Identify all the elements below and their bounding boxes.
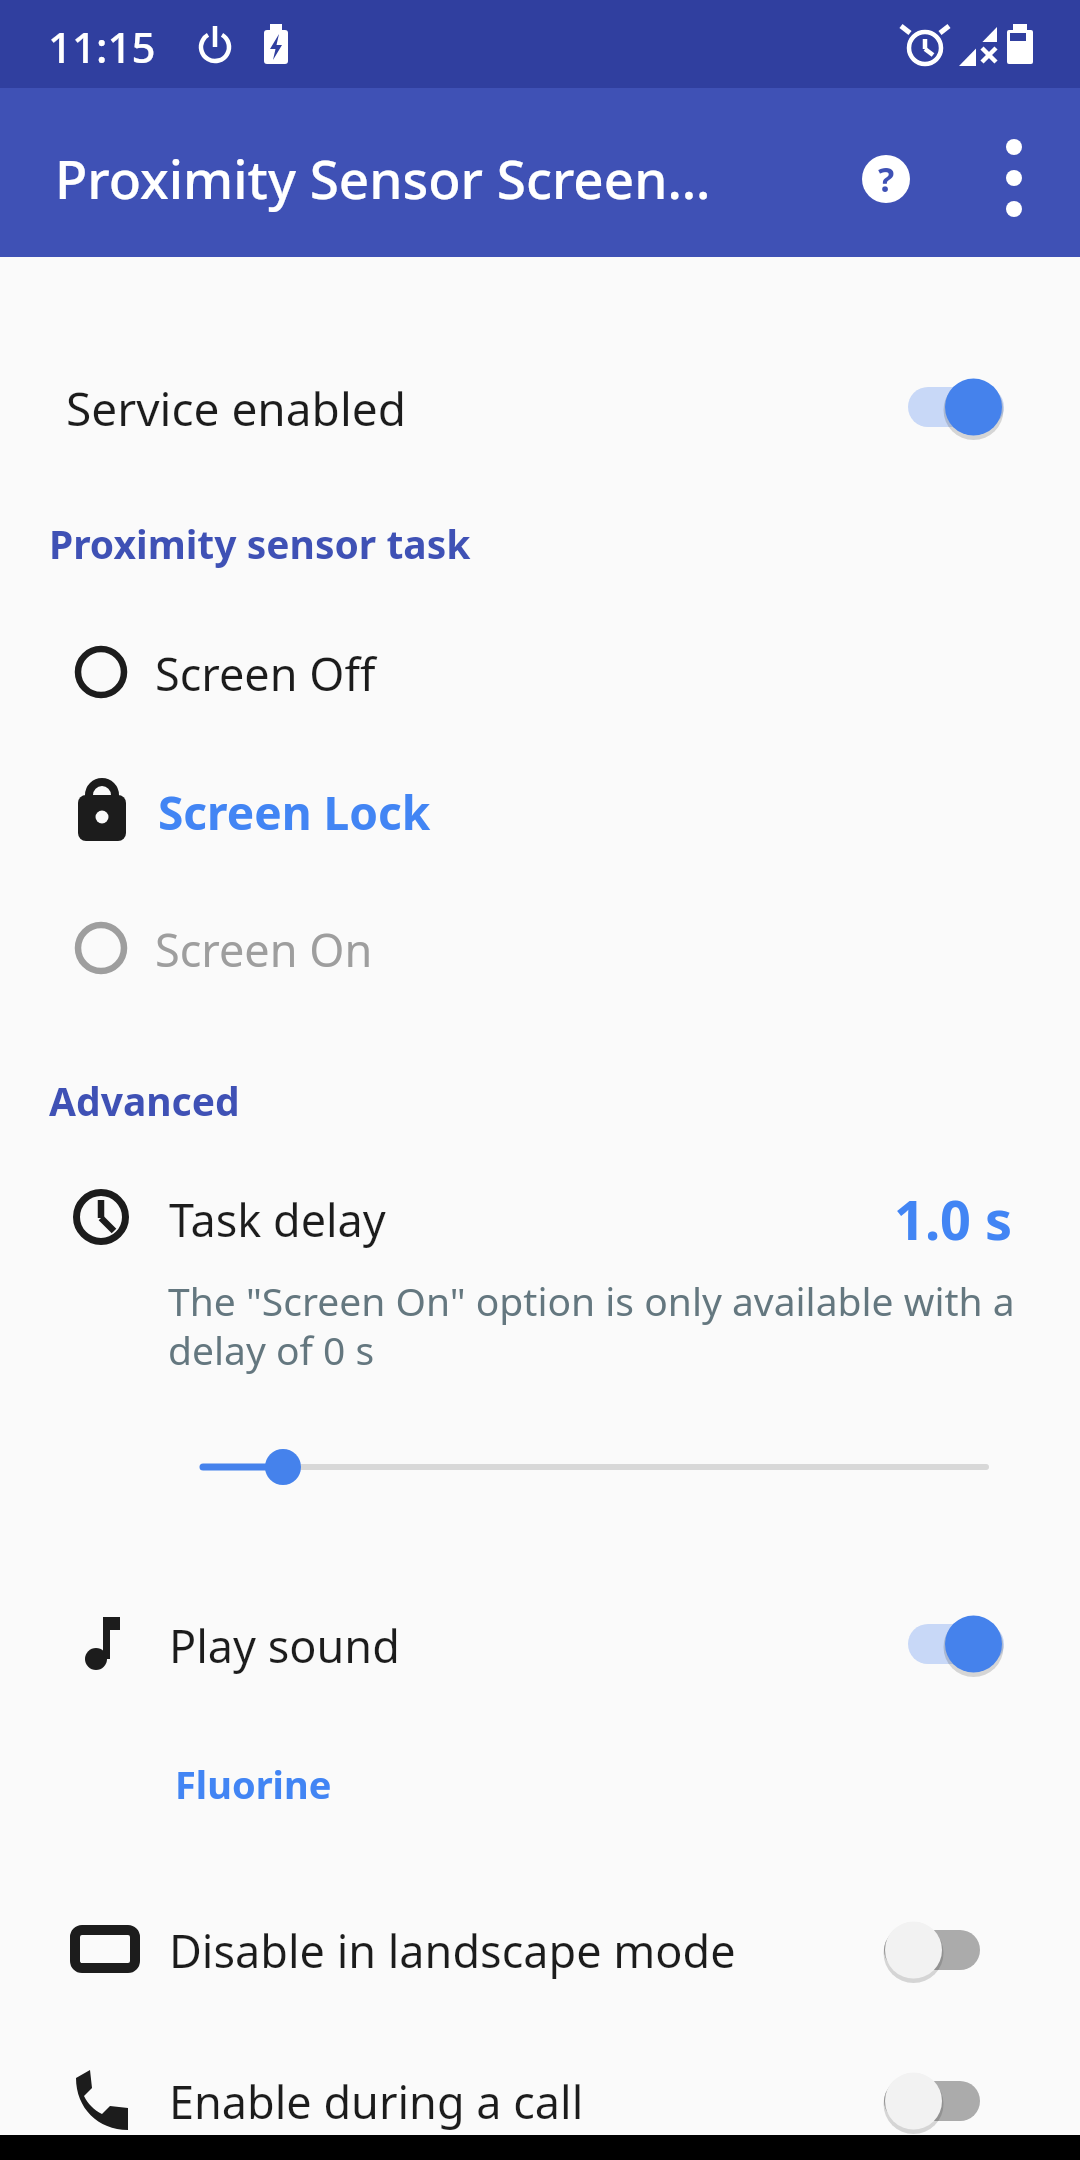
staticText: Screen Lock (158, 781, 431, 844)
button[interactable] (0, 1890, 1080, 2010)
button[interactable] (180, 1437, 1010, 1497)
staticText: The "Screen On" option is only available… (168, 1274, 1015, 1377)
button[interactable] (71, 918, 131, 978)
staticText: Task delay (169, 1189, 386, 1250)
button[interactable] (908, 1610, 1038, 1678)
staticText: Advanced (49, 1074, 240, 1127)
button[interactable] (0, 752, 1080, 872)
button[interactable] (984, 128, 1044, 228)
button[interactable] (0, 612, 1080, 732)
button[interactable]: ? (846, 139, 926, 219)
button[interactable] (908, 373, 1038, 441)
button[interactable] (0, 1585, 1080, 1705)
staticText: 1.0 s (894, 1182, 1013, 1256)
button[interactable] (884, 2067, 1014, 2135)
staticText: Screen On (155, 919, 373, 980)
button[interactable] (0, 1159, 1080, 1279)
staticText: Fluorine (175, 1758, 332, 1810)
staticText: Proximity Sensor Screen… (55, 142, 711, 214)
button[interactable] (0, 888, 1080, 1008)
button[interactable] (0, 348, 1080, 468)
button[interactable] (0, 2046, 1080, 2156)
staticText: Play sound (169, 1615, 400, 1676)
staticText: ? (878, 156, 895, 202)
staticText: Disable in landscape mode (169, 1920, 736, 1981)
button[interactable] (0, 1734, 1080, 1834)
staticText: Screen Off (155, 643, 376, 704)
staticText: 11:15 (48, 18, 156, 75)
staticText: Enable during a call (169, 2071, 584, 2132)
staticText: Proximity sensor task (49, 517, 471, 570)
staticText: Service enabled (66, 377, 406, 440)
button[interactable] (71, 642, 131, 702)
button[interactable] (884, 1916, 1014, 1984)
